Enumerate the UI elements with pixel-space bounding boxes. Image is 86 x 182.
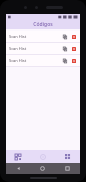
button[interactable]: Recent apps: [55, 163, 80, 174]
button[interactable]: Copy code: [61, 45, 69, 53]
button[interactable]: Copy code: [61, 57, 69, 65]
button[interactable]: Delete code: [70, 33, 78, 41]
button[interactable]: Scan Hist: [6, 43, 80, 54]
button[interactable]: Generate code: [30, 150, 55, 163]
button[interactable]: Scan Hist: [6, 55, 80, 66]
button[interactable]: Copy code: [61, 33, 69, 41]
button[interactable]: History: [55, 150, 80, 163]
staticText: Códigos: [33, 21, 53, 28]
button[interactable]: Home: [30, 163, 55, 174]
staticText: Scan Hist: [9, 34, 61, 39]
button[interactable]: Scan Hist: [6, 31, 80, 42]
button[interactable]: Back: [6, 163, 30, 174]
button[interactable]: Delete code: [70, 57, 78, 65]
staticText: Scan Hist: [9, 58, 61, 63]
button[interactable]: Delete code: [70, 45, 78, 53]
staticText: Scan Hist: [9, 46, 61, 51]
button[interactable]: Scan code: [6, 150, 30, 163]
